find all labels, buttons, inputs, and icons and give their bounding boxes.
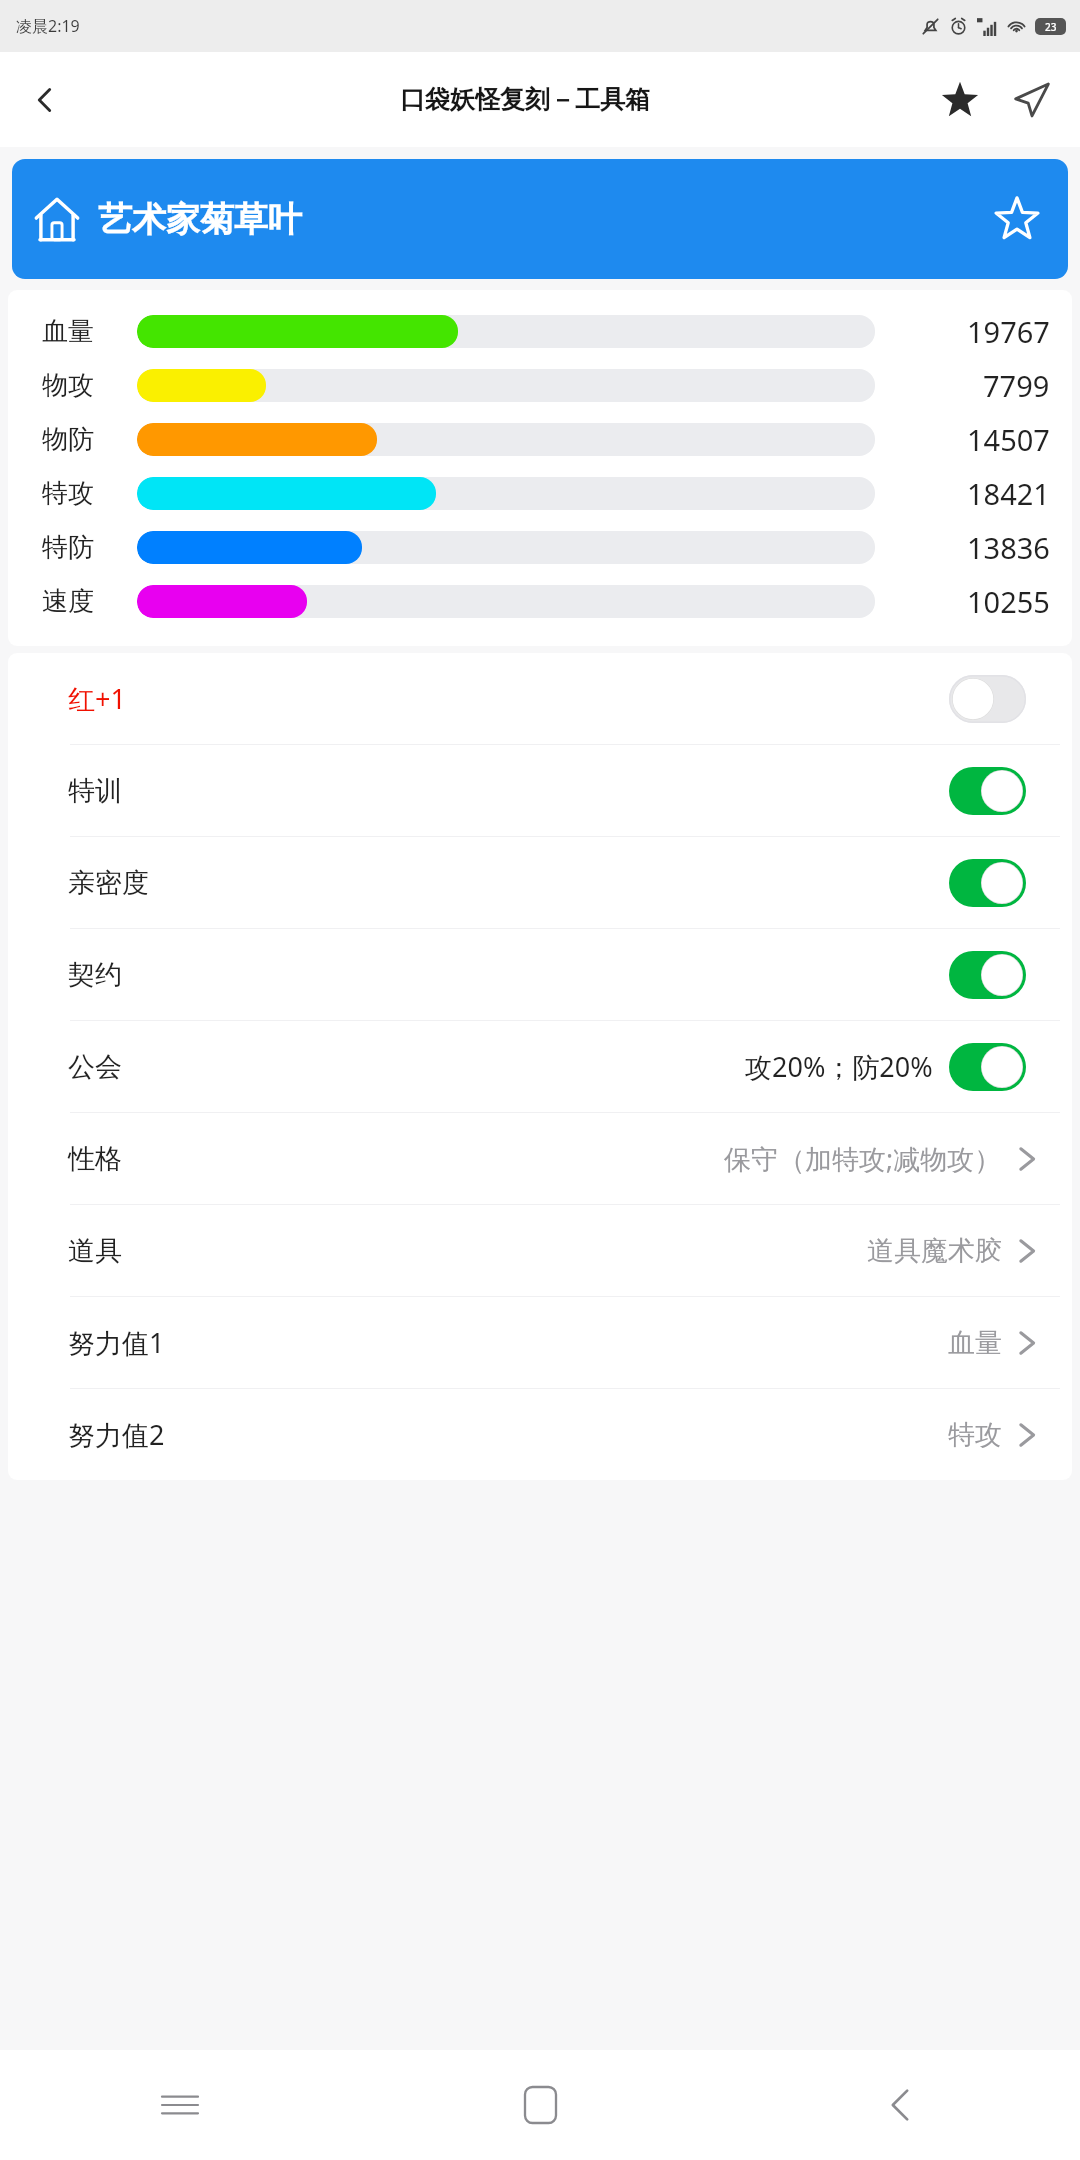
staticText: 契约 [68,958,122,992]
button[interactable]: 努力值2 [8,1389,1072,1480]
staticText: 特攻 [42,477,137,510]
staticText: 努力值2 [68,1416,165,1453]
staticText: 红+1 [68,680,126,717]
button[interactable]: Favorite [924,64,996,136]
staticText: 性格 [68,1142,122,1176]
button[interactable]: 性格 [8,1113,1072,1205]
button[interactable]: Recents [0,2050,360,2160]
button[interactable]: 公会 [8,1021,1072,1113]
button[interactable]: Share [996,64,1068,136]
staticText: 艺术家菊草叶 [98,198,302,241]
staticText: 道具魔术胶 [867,1234,1002,1268]
staticText: 公会 [68,1050,122,1084]
staticText: 物防 [42,423,137,456]
staticText: 口袋妖怪复刻－工具箱 [400,84,650,115]
staticText: 特防 [42,531,137,564]
staticText: 道具 [68,1234,122,1268]
staticText: 物攻 [42,369,137,402]
staticText: 攻20%；防20% [745,1048,933,1085]
button[interactable]: 红+1 [8,653,1072,745]
button[interactable]: Home [360,2050,720,2160]
staticText: 亲密度 [68,866,149,900]
button[interactable]: Back [720,2050,1080,2160]
staticText: 速度 [42,585,137,618]
staticText: 特攻 [948,1418,1002,1452]
staticText: 努力值1 [68,1324,165,1361]
button[interactable]: 亲密度 [8,837,1072,929]
staticText: 13836 [967,528,1050,567]
staticText: 14507 [967,420,1050,459]
staticText: 19767 [967,312,1050,351]
button[interactable]: 道具 [8,1205,1072,1297]
staticText: 特训 [68,774,122,808]
button[interactable]: 特训 [8,745,1072,837]
staticText: 血量 [42,315,137,348]
staticText: 血量 [948,1326,1002,1360]
button[interactable]: 契约 [8,929,1072,1021]
button[interactable]: 努力值1 [8,1297,1072,1389]
staticText: 23 [1045,20,1057,34]
button[interactable]: Back [14,69,76,131]
staticText: 10255 [967,582,1050,621]
button[interactable]: Bookmark [982,184,1052,254]
staticText: 凌晨2:19 [16,15,80,37]
staticText: 保守（加特攻;减物攻） [724,1140,1002,1177]
button[interactable]: 艺术家菊草叶 [12,159,1068,279]
staticText: 18421 [967,474,1050,513]
staticText: 7799 [983,366,1050,405]
